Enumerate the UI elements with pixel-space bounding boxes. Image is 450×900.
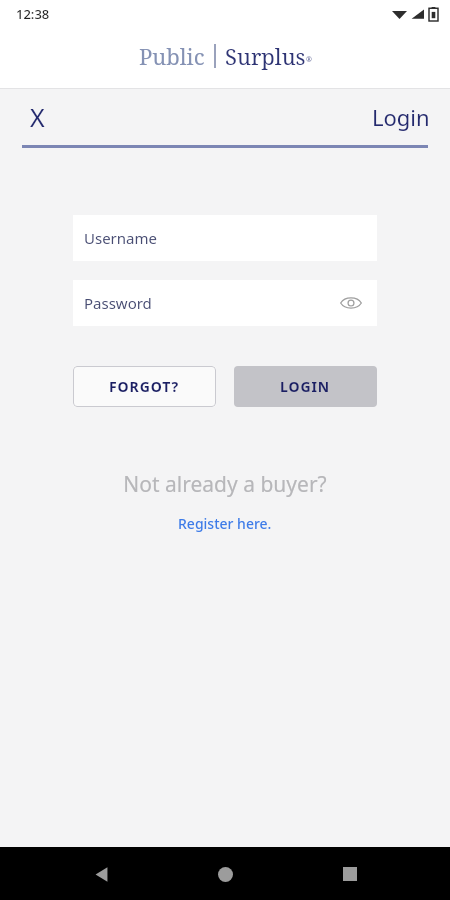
staticText: Not already a buyer? [0, 470, 450, 499]
button[interactable]: FORGOT? [73, 366, 216, 407]
button[interactable]: Login [366, 96, 436, 138]
staticText: LOGIN [280, 377, 331, 396]
button[interactable]: LOGIN [234, 366, 377, 407]
button[interactable]: Password [73, 280, 377, 326]
button[interactable]: Register here. [170, 512, 280, 535]
button[interactable]: Show password [334, 286, 368, 320]
button[interactable]: Close [16, 96, 58, 138]
staticText: Username [84, 228, 157, 248]
staticText: Login [372, 102, 430, 132]
staticText: 12:38 [16, 5, 50, 23]
staticText: Register here. [178, 514, 272, 533]
staticText: Public [139, 41, 205, 71]
button[interactable]: Home [201, 850, 249, 898]
staticText: Surplus [225, 41, 306, 71]
staticText: Password [84, 293, 152, 313]
staticText: X [30, 100, 45, 134]
staticText: ® [306, 55, 312, 65]
staticText: FORGOT? [109, 377, 180, 396]
button[interactable]: Back [77, 850, 125, 898]
button[interactable]: Username [73, 215, 377, 261]
button[interactable]: Recent apps [326, 850, 374, 898]
